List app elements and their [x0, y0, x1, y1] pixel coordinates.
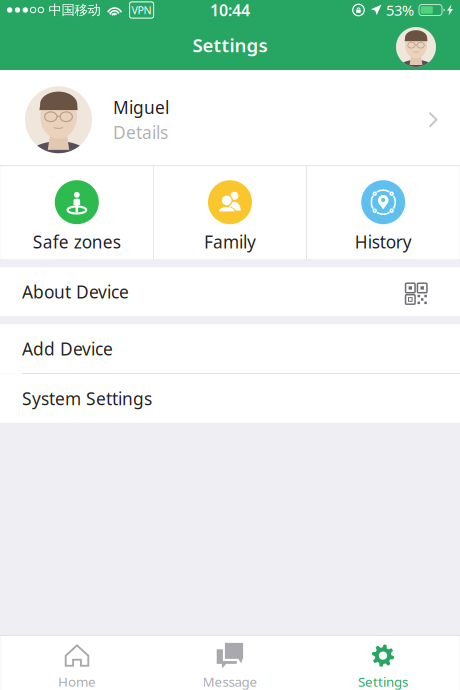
staticText: Add Device: [22, 337, 113, 360]
button[interactable]: System Settings: [0, 374, 460, 423]
staticText: Safe zones: [33, 230, 121, 253]
button[interactable]: Safe zones: [1, 166, 153, 259]
staticText: Settings: [192, 33, 267, 57]
staticText: Details: [113, 121, 168, 144]
button[interactable]: History: [307, 166, 459, 259]
button[interactable]: Home: [0, 636, 153, 690]
staticText: 中国移动: [49, 2, 101, 18]
button[interactable]: Miguel: [0, 70, 460, 165]
staticText: Home: [58, 673, 96, 690]
button[interactable]: Account: [396, 27, 436, 67]
button[interactable]: Family: [154, 166, 306, 259]
staticText: VPN: [132, 3, 152, 17]
staticText: System Settings: [22, 387, 152, 410]
button[interactable]: Message: [153, 636, 306, 690]
staticText: 53%: [386, 0, 414, 20]
button[interactable]: Settings: [306, 636, 459, 690]
staticText: Miguel: [113, 96, 169, 119]
staticText: 10:44: [210, 0, 250, 21]
staticText: Family: [204, 230, 256, 253]
staticText: History: [355, 230, 412, 253]
staticText: Settings: [358, 673, 408, 690]
staticText: Message: [202, 673, 257, 690]
button[interactable]: Add Device: [0, 324, 460, 373]
staticText: About Device: [22, 280, 129, 303]
button[interactable]: About Device: [0, 267, 460, 316]
